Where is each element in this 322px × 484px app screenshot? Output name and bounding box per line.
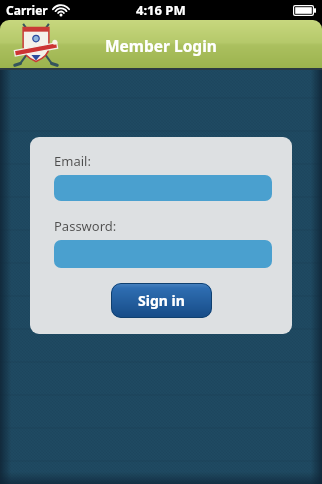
staticText: Email:: [54, 152, 91, 170]
staticText: Sign in: [138, 291, 185, 310]
staticText: Carrier: [6, 2, 48, 18]
staticText: Member Login: [105, 35, 217, 56]
staticText: 4:16 PM: [136, 1, 186, 19]
button[interactable]: [54, 175, 272, 201]
button[interactable]: Sign in: [111, 283, 212, 318]
button[interactable]: [54, 240, 272, 268]
staticText: Password:: [54, 217, 117, 235]
